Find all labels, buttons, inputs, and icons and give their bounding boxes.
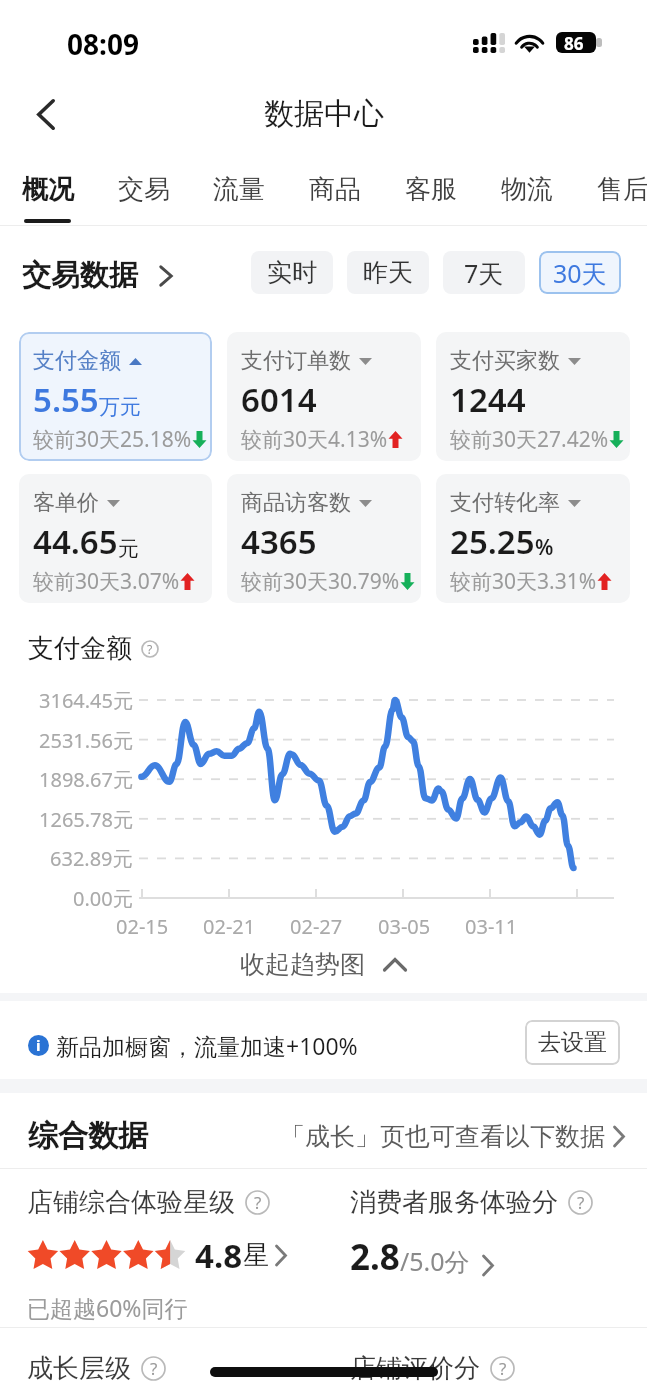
button[interactable]: 实时	[251, 251, 333, 294]
button[interactable]: 收起趋势图	[0, 935, 647, 993]
staticText: %	[535, 533, 554, 562]
button[interactable]: 客服	[383, 152, 479, 226]
staticText: ?	[147, 641, 153, 658]
staticText: 1898.67元	[39, 766, 133, 793]
staticText: 08:09	[67, 25, 139, 63]
staticText: 「成长」页也可查看以下数据	[280, 1121, 605, 1152]
staticText: 2.8	[350, 1233, 400, 1281]
staticText: 商品	[309, 173, 361, 206]
staticText: 较前30天3.31%	[450, 567, 597, 596]
staticText: 店铺综合体验星级	[27, 1186, 235, 1219]
button[interactable]: 昨天	[347, 251, 429, 294]
staticText: ?	[577, 1191, 585, 1214]
staticText: 25.25	[450, 519, 535, 564]
button[interactable]: 去设置	[525, 1020, 620, 1065]
staticText: 30天	[553, 256, 607, 290]
staticText: /5.0分	[400, 1244, 470, 1278]
staticText: ?	[254, 1191, 262, 1214]
staticText: 7天	[464, 256, 504, 290]
staticText: 实时	[267, 257, 317, 288]
staticText: 632.89元	[50, 845, 133, 872]
button[interactable]: 30天	[539, 251, 621, 294]
staticText: 支付买家数	[450, 347, 560, 375]
staticText: 客服	[405, 173, 457, 206]
button[interactable]: Help	[568, 1190, 593, 1215]
staticText: 流量	[213, 173, 265, 206]
staticText: 售后	[597, 173, 647, 206]
staticText: 支付金额	[33, 347, 121, 375]
button[interactable]: 「成长」页也可查看以下数据	[280, 1121, 625, 1152]
staticText: 44.65	[33, 519, 118, 564]
button[interactable]: 售后	[575, 152, 647, 226]
button[interactable]: Help	[141, 640, 159, 658]
staticText: 概况	[22, 173, 74, 206]
staticText: 综合数据	[28, 1117, 148, 1155]
staticText: 较前30天30.79%	[241, 567, 400, 596]
staticText: 3164.45元	[39, 687, 133, 714]
staticText: 新品加橱窗，流量加速+100%	[56, 1030, 358, 1061]
staticText: 4365	[241, 519, 317, 564]
button[interactable]: Back	[18, 86, 74, 142]
button[interactable]: 7天	[443, 251, 525, 294]
staticText: 支付订单数	[241, 347, 351, 375]
staticText: ?	[499, 1357, 507, 1380]
button[interactable]: Help	[141, 1356, 166, 1381]
staticText: 交易	[118, 173, 170, 206]
staticText: 86	[564, 32, 584, 53]
button[interactable]: 支付金额	[19, 332, 212, 461]
staticText: 消费者服务体验分	[350, 1186, 558, 1219]
button[interactable]: 流量	[191, 152, 287, 226]
staticText: 成长层级	[27, 1352, 131, 1385]
staticText: 客单价	[33, 489, 99, 517]
staticText: 元	[118, 536, 139, 562]
staticText: 4.8	[195, 1233, 243, 1278]
button[interactable]: 支付买家数	[436, 332, 630, 461]
staticText: 已超越60%同行	[27, 1292, 188, 1323]
staticText: 6014	[241, 377, 317, 422]
staticText: i	[36, 1035, 41, 1055]
staticText: 02-27	[290, 913, 343, 940]
staticText: 2531.56元	[39, 727, 133, 754]
button[interactable]: 商品访客数	[227, 474, 421, 603]
staticText: 支付转化率	[450, 489, 560, 517]
staticText: 1265.78元	[39, 806, 133, 833]
staticText: 万元	[99, 394, 141, 420]
staticText: 店铺评价分	[350, 1352, 480, 1385]
button[interactable]: 支付转化率	[436, 474, 630, 603]
staticText: 去设置	[538, 1028, 607, 1057]
staticText: 较前30天25.18%	[33, 425, 192, 454]
button[interactable]: Help	[245, 1190, 270, 1215]
button[interactable]: 商品	[287, 152, 383, 226]
staticText: 0.00元	[73, 885, 133, 912]
staticText: 03-11	[465, 913, 518, 940]
staticText: 收起趋势图	[240, 949, 365, 980]
staticText: 1244	[450, 377, 526, 422]
staticText: ?	[150, 1357, 158, 1380]
staticText: 02-21	[203, 913, 256, 940]
button[interactable]: Help	[490, 1356, 515, 1381]
button[interactable]: 概况	[0, 152, 96, 226]
staticText: 03-05	[378, 913, 431, 940]
staticText: 支付金额	[28, 632, 132, 665]
staticText: 较前30天4.13%	[241, 425, 388, 454]
staticText: 较前30天3.07%	[33, 567, 180, 596]
button[interactable]: 客单价	[19, 474, 212, 603]
staticText: 物流	[501, 173, 553, 206]
staticText: 昨天	[363, 257, 413, 288]
button[interactable]: 物流	[479, 152, 575, 226]
staticText: 5.55	[33, 377, 99, 422]
button[interactable]: 支付订单数	[227, 332, 421, 461]
staticText: 较前30天27.42%	[450, 425, 609, 454]
staticText: 商品访客数	[241, 489, 351, 517]
staticText: 交易数据	[22, 257, 138, 294]
button[interactable]: 交易数据	[22, 257, 173, 294]
staticText: 数据中心	[264, 95, 384, 133]
staticText: 星	[243, 1239, 269, 1272]
staticText: 02-15	[116, 913, 169, 940]
button[interactable]: 交易	[96, 152, 192, 226]
